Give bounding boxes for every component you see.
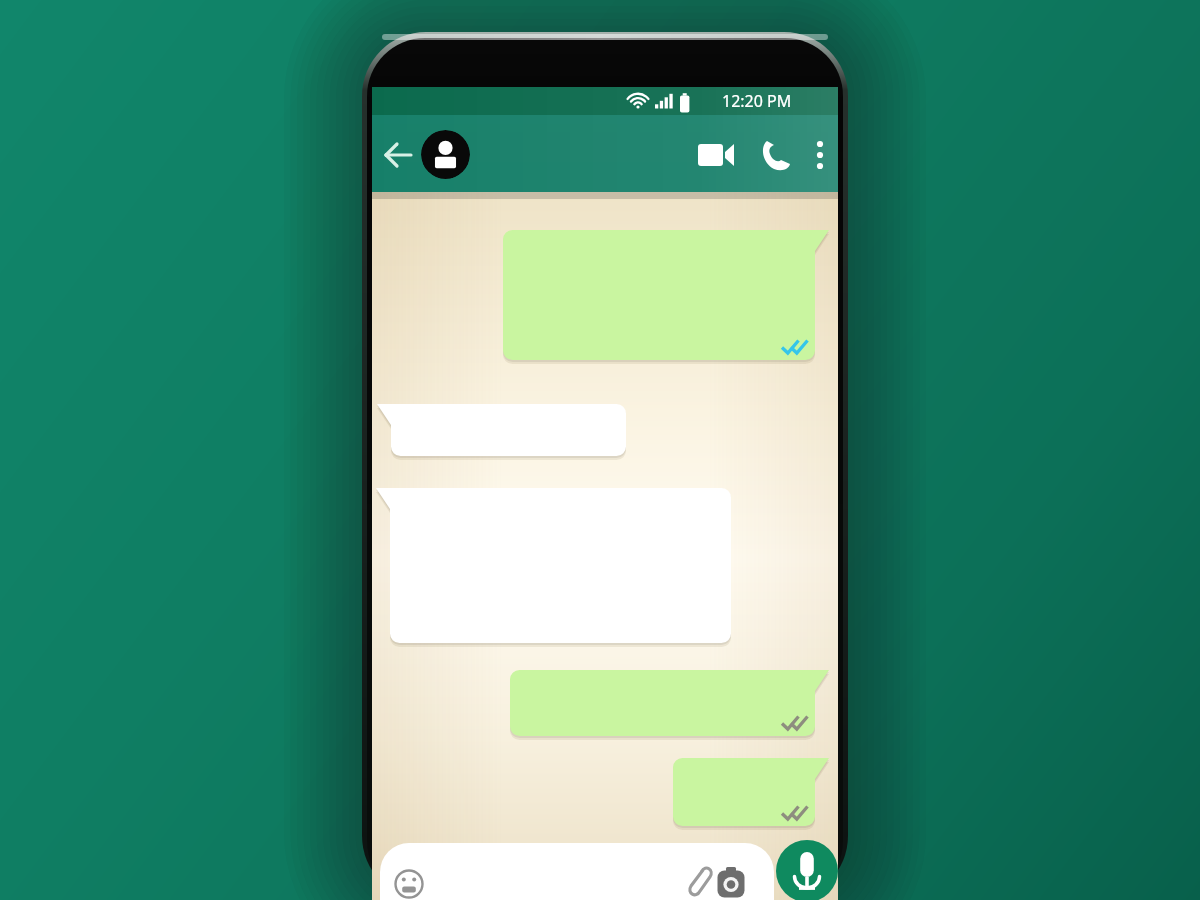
button[interactable]: More options	[806, 132, 834, 178]
button[interactable]: Record voice message	[776, 840, 838, 900]
button[interactable]: Video call	[691, 132, 739, 178]
button[interactable]: Voice call	[754, 132, 798, 178]
button[interactable]: Type a message	[380, 843, 774, 900]
button[interactable]: Contact profile photo	[421, 130, 470, 179]
staticText: 12:20 PM	[722, 90, 792, 112]
button[interactable]: Back	[377, 132, 421, 178]
